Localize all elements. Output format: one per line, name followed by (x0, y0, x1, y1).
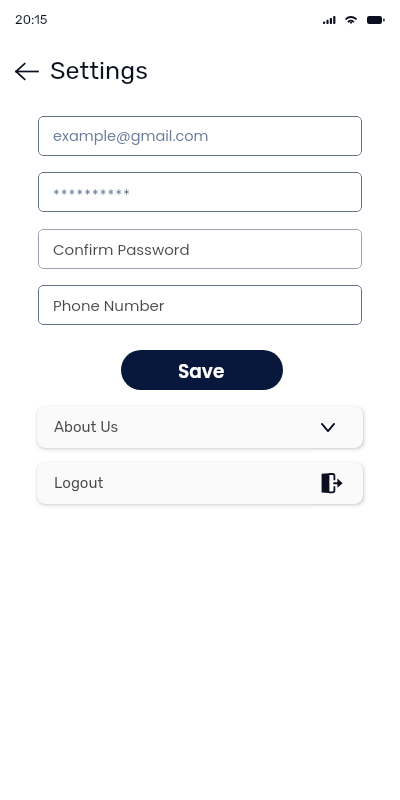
button[interactable]: Phone Number (38, 285, 362, 325)
staticText: Logout (54, 474, 104, 492)
staticText: About Us (54, 418, 119, 436)
button[interactable]: About Us (37, 406, 363, 448)
button[interactable]: Confirm Password (38, 229, 362, 269)
staticText: Settings (50, 56, 148, 86)
button[interactable] (38, 172, 362, 212)
button[interactable]: Back (12, 57, 40, 85)
staticText: Save (178, 359, 225, 385)
button[interactable]: Save (121, 350, 283, 390)
button[interactable]: Logout (37, 462, 363, 504)
staticText: Confirm Password (53, 239, 190, 260)
staticText: Phone Number (53, 295, 165, 316)
button[interactable]: example@gmail.com (38, 116, 362, 156)
staticText: 20:15 (15, 12, 48, 27)
staticText: example@gmail.com (53, 126, 209, 146)
